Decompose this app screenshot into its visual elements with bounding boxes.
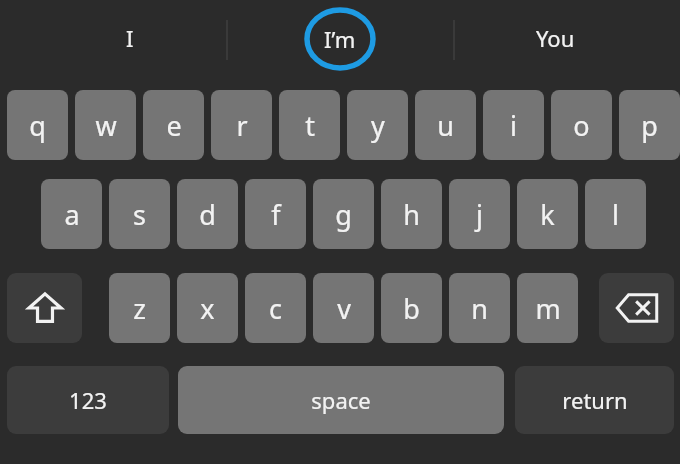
button[interactable]: m xyxy=(517,273,578,343)
staticText: n xyxy=(471,290,488,327)
staticText: You xyxy=(536,23,575,53)
button[interactable]: w xyxy=(75,90,136,160)
button[interactable]: f xyxy=(245,179,306,249)
staticText: x xyxy=(200,290,215,327)
button[interactable]: g xyxy=(313,179,374,249)
button[interactable]: return xyxy=(515,366,674,434)
button[interactable]: i xyxy=(483,90,544,160)
staticText: y xyxy=(371,107,385,144)
staticText: m xyxy=(535,290,561,327)
staticText: I xyxy=(126,23,134,53)
staticText: a xyxy=(64,196,80,233)
staticText: s xyxy=(133,196,146,233)
button[interactable]: v xyxy=(313,273,374,343)
staticText: 123 xyxy=(69,385,107,415)
button[interactable]: n xyxy=(449,273,510,343)
button[interactable]: b xyxy=(381,273,442,343)
staticText: u xyxy=(437,107,454,144)
staticText: r xyxy=(236,107,248,144)
button[interactable]: h xyxy=(381,179,442,249)
button[interactable]: j xyxy=(449,179,510,249)
button[interactable]: x xyxy=(177,273,238,343)
staticText: o xyxy=(573,107,590,144)
staticText: p xyxy=(641,107,658,144)
button[interactable]: c xyxy=(245,273,306,343)
staticText: t xyxy=(305,107,315,144)
staticText: I’m xyxy=(324,24,356,54)
button[interactable]: k xyxy=(517,179,578,249)
button[interactable]: d xyxy=(177,179,238,249)
button[interactable]: t xyxy=(279,90,340,160)
staticText: q xyxy=(29,107,46,144)
button[interactable]: s xyxy=(109,179,170,249)
staticText: w xyxy=(95,107,117,144)
button[interactable]: Shift xyxy=(7,273,82,343)
button[interactable]: p xyxy=(619,90,680,160)
button[interactable]: 123 xyxy=(7,366,169,434)
staticText: d xyxy=(199,196,216,233)
button[interactable]: e xyxy=(143,90,204,160)
button[interactable]: o xyxy=(551,90,612,160)
staticText: f xyxy=(271,196,281,233)
button[interactable]: q xyxy=(7,90,68,160)
button[interactable]: Backspace xyxy=(599,273,674,343)
button[interactable]: I’m xyxy=(271,8,409,70)
staticText: j xyxy=(476,196,483,233)
staticText: g xyxy=(335,196,352,233)
button[interactable]: a xyxy=(41,179,102,249)
staticText: h xyxy=(403,196,420,233)
button[interactable]: r xyxy=(211,90,272,160)
staticText: v xyxy=(337,290,351,327)
button[interactable]: l xyxy=(585,179,646,249)
button[interactable]: You xyxy=(470,8,640,68)
staticText: l xyxy=(612,196,619,233)
button[interactable]: z xyxy=(109,273,170,343)
staticText: k xyxy=(540,196,555,233)
staticText: e xyxy=(166,107,182,144)
button[interactable]: I xyxy=(40,8,220,68)
staticText: c xyxy=(269,290,282,327)
staticText: z xyxy=(133,290,146,327)
button[interactable]: y xyxy=(347,90,408,160)
button[interactable]: space xyxy=(178,366,504,434)
button[interactable]: u xyxy=(415,90,476,160)
staticText: i xyxy=(510,107,517,144)
staticText: return xyxy=(562,385,628,415)
staticText: space xyxy=(311,385,371,415)
staticText: b xyxy=(403,290,420,327)
